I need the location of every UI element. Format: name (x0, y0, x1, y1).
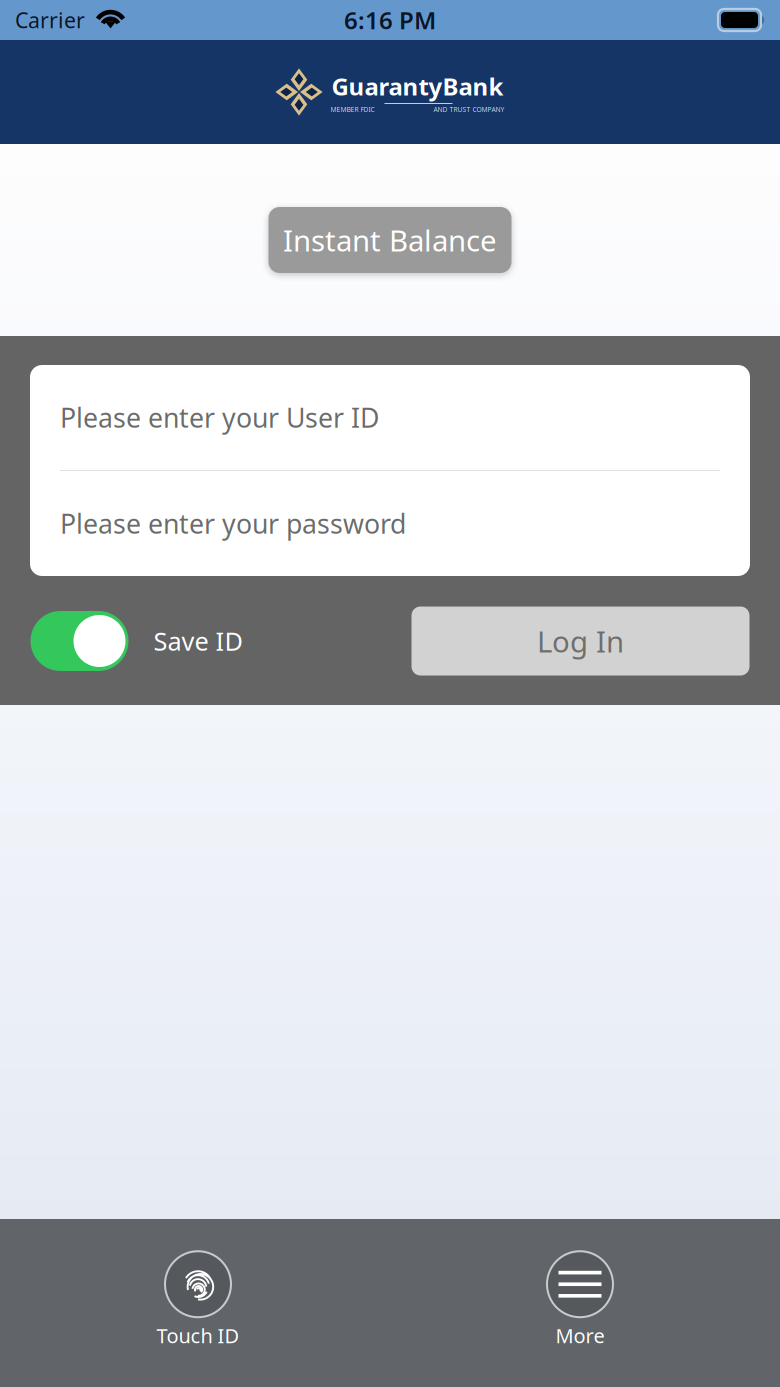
staticText: GuarantyBank (331, 70, 503, 102)
button[interactable]: More (485, 1251, 675, 1349)
staticText: AND TRUST COMPANY (433, 105, 504, 114)
staticText: 6:16 PM (344, 4, 436, 36)
button[interactable]: Touch ID (103, 1251, 293, 1349)
staticText: Instant Balance (283, 220, 497, 259)
staticText: Save ID (153, 624, 242, 658)
staticText: Touch ID (156, 1322, 239, 1349)
staticText: MEMBER FDIC (330, 105, 374, 114)
staticText: Carrier (15, 6, 85, 34)
button[interactable]: Save ID (30, 611, 128, 671)
staticText: More (555, 1322, 604, 1349)
staticText: Log In (537, 621, 624, 660)
staticText: Please enter your password (60, 506, 406, 541)
button[interactable]: Log In (411, 606, 749, 675)
staticText: Please enter your User ID (60, 400, 379, 435)
button[interactable]: Instant Balance (268, 207, 511, 273)
